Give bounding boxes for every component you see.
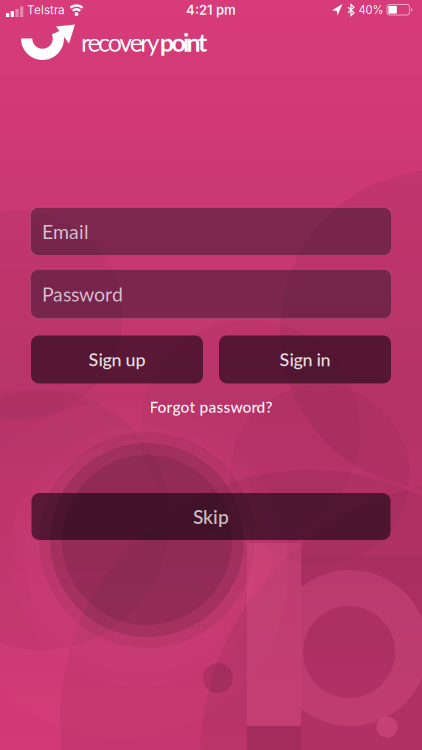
staticText: recovery [81,27,160,57]
button[interactable]: Email [30,207,391,255]
staticText: Sign up [88,349,145,370]
staticText: point [160,27,207,57]
staticText: Forgot password? [149,397,272,416]
button[interactable]: Sign in [219,335,391,383]
button[interactable]: Password [30,269,391,318]
staticText: Sign in [279,349,330,370]
staticText: Email [42,220,89,243]
button[interactable]: Forgot password? [149,397,272,416]
staticText: Skip [193,505,229,528]
button[interactable]: Sign up [31,335,203,383]
staticText: 4:21 pm [186,2,236,18]
button[interactable]: Skip [31,493,390,540]
staticText: Password [42,282,123,306]
staticText: 40% [358,3,383,17]
staticText: Telstra [27,3,65,17]
